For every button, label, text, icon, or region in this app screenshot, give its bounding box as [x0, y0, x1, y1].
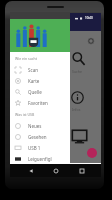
- button[interactable]: Neues: [10, 120, 101, 131]
- staticText: Suche: [72, 69, 82, 74]
- staticText: USB 1: [28, 145, 41, 151]
- staticText: Gesehen: [28, 134, 47, 140]
- staticText: Favoriten: [28, 100, 48, 106]
- button[interactable]: Add: [87, 148, 97, 158]
- button[interactable]: Karte: [10, 75, 101, 86]
- staticText: Infos: [72, 107, 81, 112]
- staticText: Wie ein sucht: [15, 56, 37, 61]
- button[interactable]: Gesehen: [10, 131, 101, 142]
- staticText: 10:40: [85, 16, 93, 20]
- button[interactable]: Home: [50, 165, 61, 176]
- button[interactable]: Scan: [10, 64, 101, 75]
- staticText: Scan: [28, 67, 38, 73]
- staticText: Quelle: [28, 89, 42, 95]
- button[interactable]: Back: [25, 165, 36, 176]
- staticText: Leiguenfigl: [28, 156, 52, 162]
- button[interactable]: Settings: [87, 37, 95, 45]
- button[interactable]: Quelle: [10, 86, 101, 97]
- button[interactable]: USB 1: [10, 142, 101, 153]
- button[interactable]: Recents: [76, 165, 87, 176]
- button[interactable]: Favoriten: [10, 97, 101, 108]
- button[interactable]: Leiguenfigl: [10, 153, 101, 164]
- staticText: Was ist USB: [15, 112, 35, 117]
- staticText: Karte: [28, 78, 40, 84]
- staticText: Neues: [28, 123, 42, 129]
